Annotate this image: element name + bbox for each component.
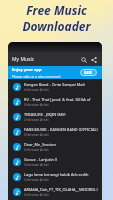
button[interactable]: ARIANA_Dah_FT_TIK_OLAHA__ME(ORIG.) [8,184,102,199]
button[interactable]: Kangen Band - Cinta Sampai Mati [8,79,102,94]
staticText: Enjoy your app [12,67,42,72]
staticText: Kangen Band - Cinta Sampai Mati [24,82,85,87]
staticText: Dear_Me_Session [24,142,56,147]
button[interactable]: Share [89,55,98,64]
staticText: Please rate us a nice comment [12,74,61,79]
button[interactable]: FANS MUSIK - KANGEN BAND (OFFICIAL) [8,124,102,139]
button[interactable]: Enjoy your app [8,66,102,79]
staticText: ARIANA_Dah_FT_TIK_OLAHA__ME(ORIG.) [24,187,98,192]
staticText: Unknown Artist [24,102,49,107]
staticText: Unknown Artist [24,177,49,182]
staticText: Unknown Artist [24,87,49,92]
staticText: Lagu lama kenangi habib Arb sedih melanc… [24,172,99,177]
staticText: Unknown Artist [24,132,49,137]
staticText: RATE [84,70,93,75]
staticText: Downloader [22,18,91,34]
button[interactable]: Lagu lama kenangi habib Arb sedih melanc… [8,169,102,184]
button[interactable]: Search [79,55,88,64]
button[interactable]: RATE [80,69,97,76]
staticText: Unknown Artist [24,162,49,167]
staticText: Gusue - Lanjutin () [24,157,58,162]
staticText: Unknown Artist [24,117,49,122]
staticText: RV - That That [prod. & feat. SUGA of BT… [24,97,99,102]
staticText: TREASURE - JIKJIN (MV) [24,112,66,117]
staticText: Unknown Artist [24,192,49,197]
button[interactable]: TREASURE - JIKJIN (MV) [8,109,102,124]
staticText: My Music [12,56,35,63]
button[interactable]: Gusue - Lanjutin () [8,154,102,169]
staticText: FANS MUSIK - KANGEN BAND (OFFICIAL) [24,127,98,132]
button[interactable]: RV - That That [prod. & feat. SUGA of BT… [8,94,102,109]
staticText: Unknown Artist [24,147,49,152]
staticText: Free Music [26,2,87,18]
button[interactable]: Dear_Me_Session [8,139,102,154]
